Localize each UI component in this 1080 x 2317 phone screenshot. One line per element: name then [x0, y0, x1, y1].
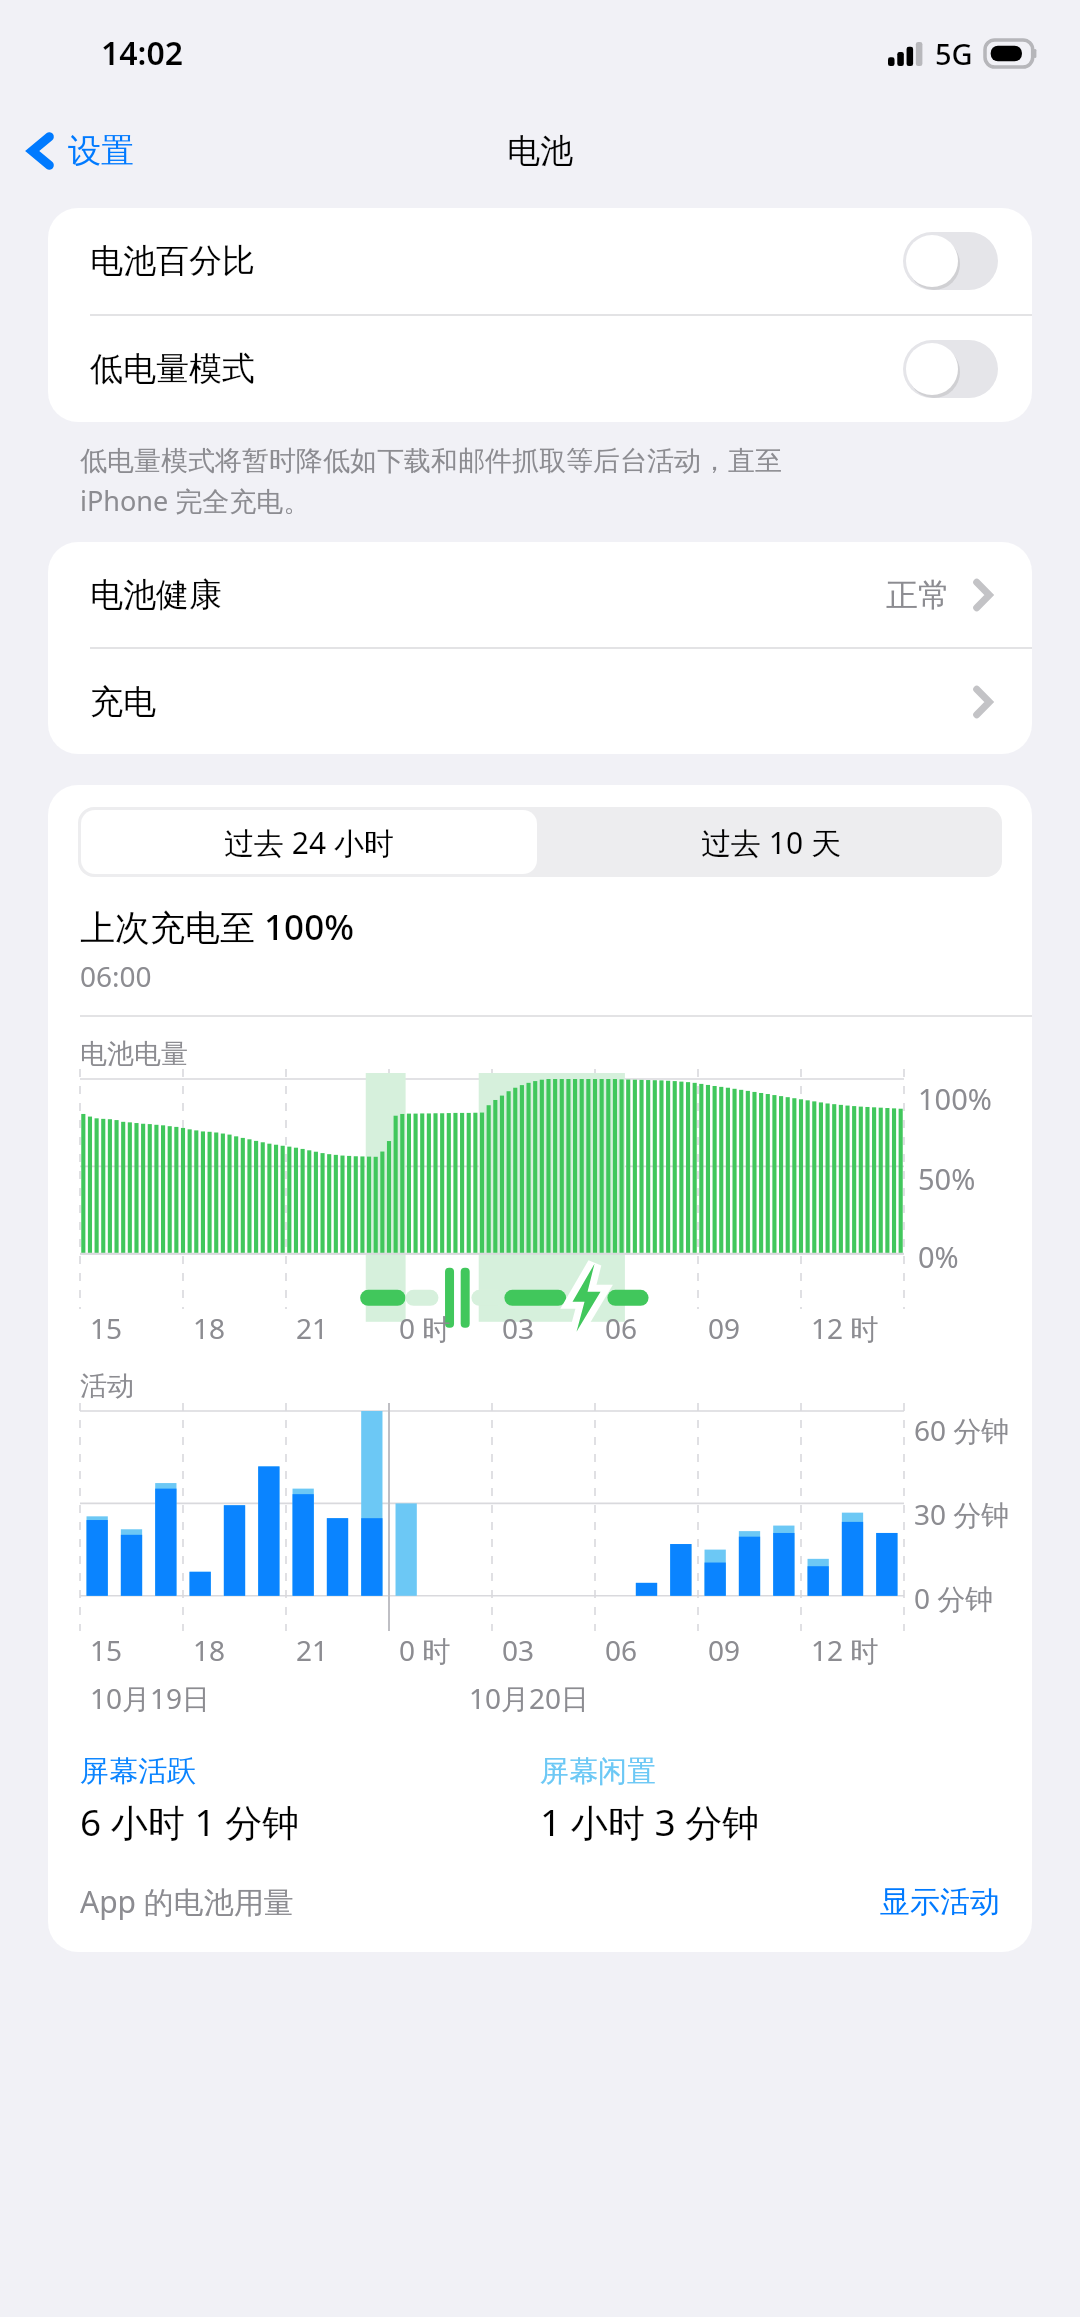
staticText: 正常	[886, 575, 950, 615]
staticText: 03	[502, 1309, 535, 1347]
button[interactable]: 低电量模式	[48, 316, 1032, 422]
staticText: 03	[502, 1631, 535, 1669]
button[interactable]: 电池百分比	[48, 208, 1032, 314]
button[interactable]: 设置	[0, 122, 150, 180]
staticText: 5G	[935, 34, 973, 73]
staticText: 显示活动	[880, 1883, 1000, 1921]
staticText: 12 时	[811, 1309, 879, 1347]
staticText: 09	[708, 1631, 741, 1669]
staticText: 1 小时 3 分钟	[540, 1796, 760, 1847]
staticText: 10月19日	[90, 1679, 211, 1717]
staticText: 屏幕活跃	[80, 1753, 196, 1790]
staticText: 电池电量	[80, 1037, 188, 1071]
staticText: 100%	[918, 1079, 992, 1118]
staticText: 12 时	[811, 1631, 879, 1669]
staticText: 14:02	[101, 31, 184, 75]
button[interactable]: 过去 10 天	[540, 807, 1002, 877]
staticText: 电池健康	[90, 574, 222, 616]
staticText: 屏幕闲置	[540, 1753, 656, 1790]
staticText: 60 分钟	[914, 1411, 1010, 1449]
staticText: 15	[90, 1631, 123, 1669]
staticText: 电池百分比	[90, 240, 255, 282]
button[interactable]: 电池健康	[48, 542, 1032, 647]
button[interactable]: 显示活动	[880, 1883, 1000, 1921]
staticText: 0 时	[399, 1309, 451, 1347]
staticText: 过去 24 小时	[224, 822, 394, 863]
button[interactable]: 低电量模式	[903, 340, 998, 398]
staticText: 21	[296, 1309, 329, 1347]
button[interactable]: 电池百分比	[903, 232, 998, 290]
staticText: 低电量模式	[90, 348, 255, 390]
staticText: 06	[605, 1631, 638, 1669]
staticText: 50%	[918, 1159, 976, 1198]
staticText: 充电	[90, 681, 156, 723]
staticText: 0 时	[399, 1631, 451, 1669]
button[interactable]: 过去 24 小时	[81, 810, 537, 874]
staticText: 0%	[918, 1237, 959, 1276]
staticText: 06:00	[80, 957, 152, 995]
staticText: 09	[708, 1309, 741, 1347]
staticText: 18	[193, 1631, 226, 1669]
staticText: App 的电池用量	[80, 1881, 294, 1922]
staticText: 过去 10 天	[701, 822, 841, 863]
staticText: 10月20日	[469, 1679, 590, 1717]
staticText: 活动	[80, 1369, 134, 1403]
staticText: 电池	[507, 130, 573, 172]
staticText: 设置	[68, 130, 134, 172]
staticText: 6 小时 1 分钟	[80, 1796, 300, 1847]
button[interactable]: 充电	[48, 649, 1032, 754]
staticText: 21	[296, 1631, 329, 1669]
staticText: 30 分钟	[914, 1495, 1010, 1533]
staticText: 上次充电至 100%	[80, 903, 354, 951]
staticText: 0 分钟	[914, 1579, 994, 1617]
staticText: 18	[193, 1309, 226, 1347]
staticText: 06	[605, 1309, 638, 1347]
staticText: 15	[90, 1309, 123, 1347]
staticText: 低电量模式将暂时降低如下载和邮件抓取等后台活动，直至 iPhone 完全充电。	[80, 444, 1032, 519]
